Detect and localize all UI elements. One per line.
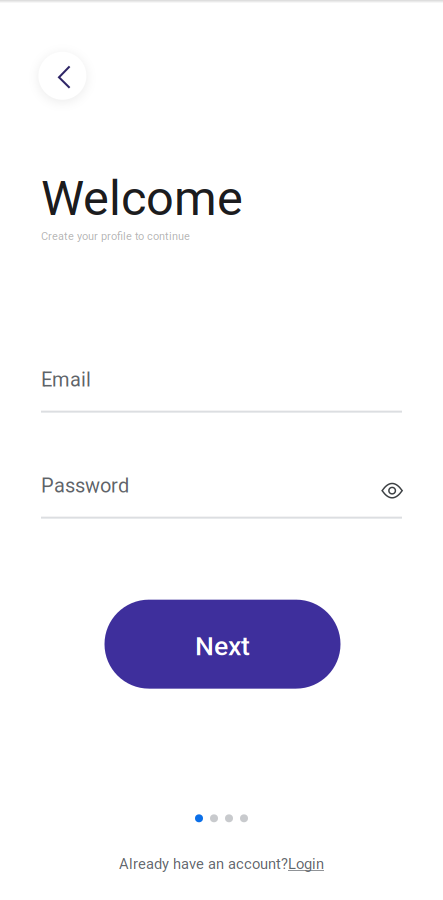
- button[interactable]: Show password: [378, 472, 403, 500]
- staticText: Create your profile to continue: [41, 230, 190, 243]
- staticText: Password: [41, 474, 129, 497]
- button[interactable]: Back: [38, 52, 86, 100]
- staticText: Already have an account?: [119, 855, 288, 872]
- staticText: Next: [195, 630, 250, 662]
- staticText: Login: [288, 855, 324, 872]
- button[interactable]: Next: [104, 600, 340, 689]
- staticText: Email: [41, 368, 91, 391]
- staticText: Welcome: [41, 170, 243, 227]
- button[interactable]: Login: [288, 855, 324, 872]
